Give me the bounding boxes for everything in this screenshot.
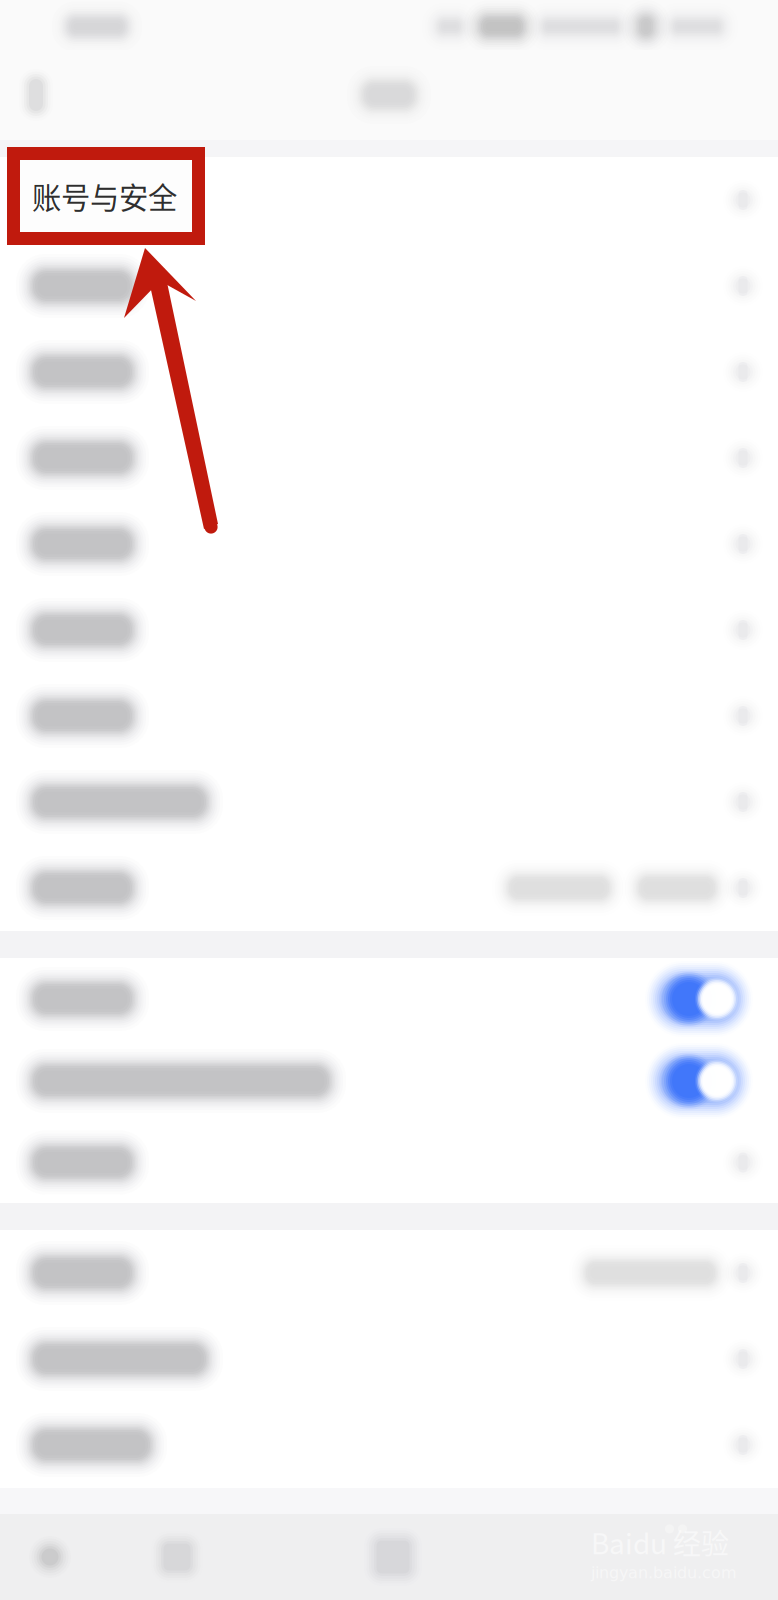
- button[interactable]: Settings item: [0, 243, 778, 329]
- button[interactable]: Settings item: [0, 329, 778, 415]
- button[interactable]: Settings item: [0, 673, 778, 759]
- button[interactable]: Recents: [254, 1514, 532, 1600]
- button[interactable]: Account and security: [0, 157, 778, 243]
- button[interactable]: Settings item: [0, 1122, 778, 1203]
- staticText: 账号与安全: [32, 175, 177, 217]
- button[interactable]: Settings item: [0, 1316, 778, 1402]
- button[interactable]: Settings item: [0, 1230, 778, 1316]
- button[interactable]: Settings item: [0, 1402, 778, 1488]
- button[interactable]: Settings item: [0, 759, 778, 845]
- button[interactable]: Home: [100, 1514, 254, 1600]
- button[interactable]: Toggle setting: [0, 958, 778, 1040]
- button[interactable]: Settings item: [0, 845, 778, 931]
- button[interactable]: Toggle setting: [0, 1040, 778, 1122]
- button[interactable]: Settings item: [0, 415, 778, 501]
- button[interactable]: Settings item: [0, 501, 778, 587]
- button[interactable]: Back: [0, 51, 72, 139]
- button[interactable]: Back: [0, 1502, 100, 1600]
- button[interactable]: Settings item: [0, 587, 778, 673]
